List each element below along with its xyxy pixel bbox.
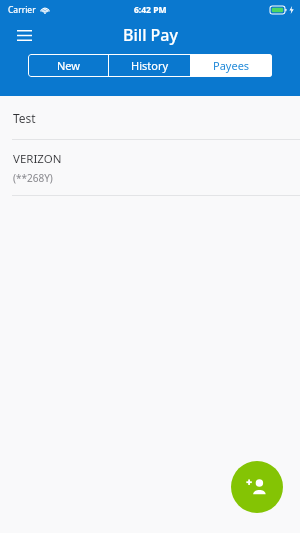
button[interactable]: Open navigation menu <box>10 21 38 49</box>
button[interactable]: VERIZON <box>0 140 300 195</box>
staticText: History <box>131 58 169 73</box>
staticText: Bill Pay <box>123 24 178 46</box>
staticText: 6:42 PM <box>134 4 167 16</box>
staticText: New <box>57 58 80 73</box>
button[interactable]: Payees <box>191 54 272 77</box>
staticText: Carrier <box>8 4 36 16</box>
staticText: Payees <box>213 58 250 73</box>
staticText: (**268Y) <box>13 171 53 185</box>
staticText: VERIZON <box>13 151 62 167</box>
button[interactable]: New <box>28 54 108 77</box>
staticText: Test <box>13 110 36 126</box>
button[interactable]: Test <box>0 96 300 139</box>
button[interactable]: Add payee <box>231 461 283 513</box>
button[interactable]: History <box>109 54 190 77</box>
